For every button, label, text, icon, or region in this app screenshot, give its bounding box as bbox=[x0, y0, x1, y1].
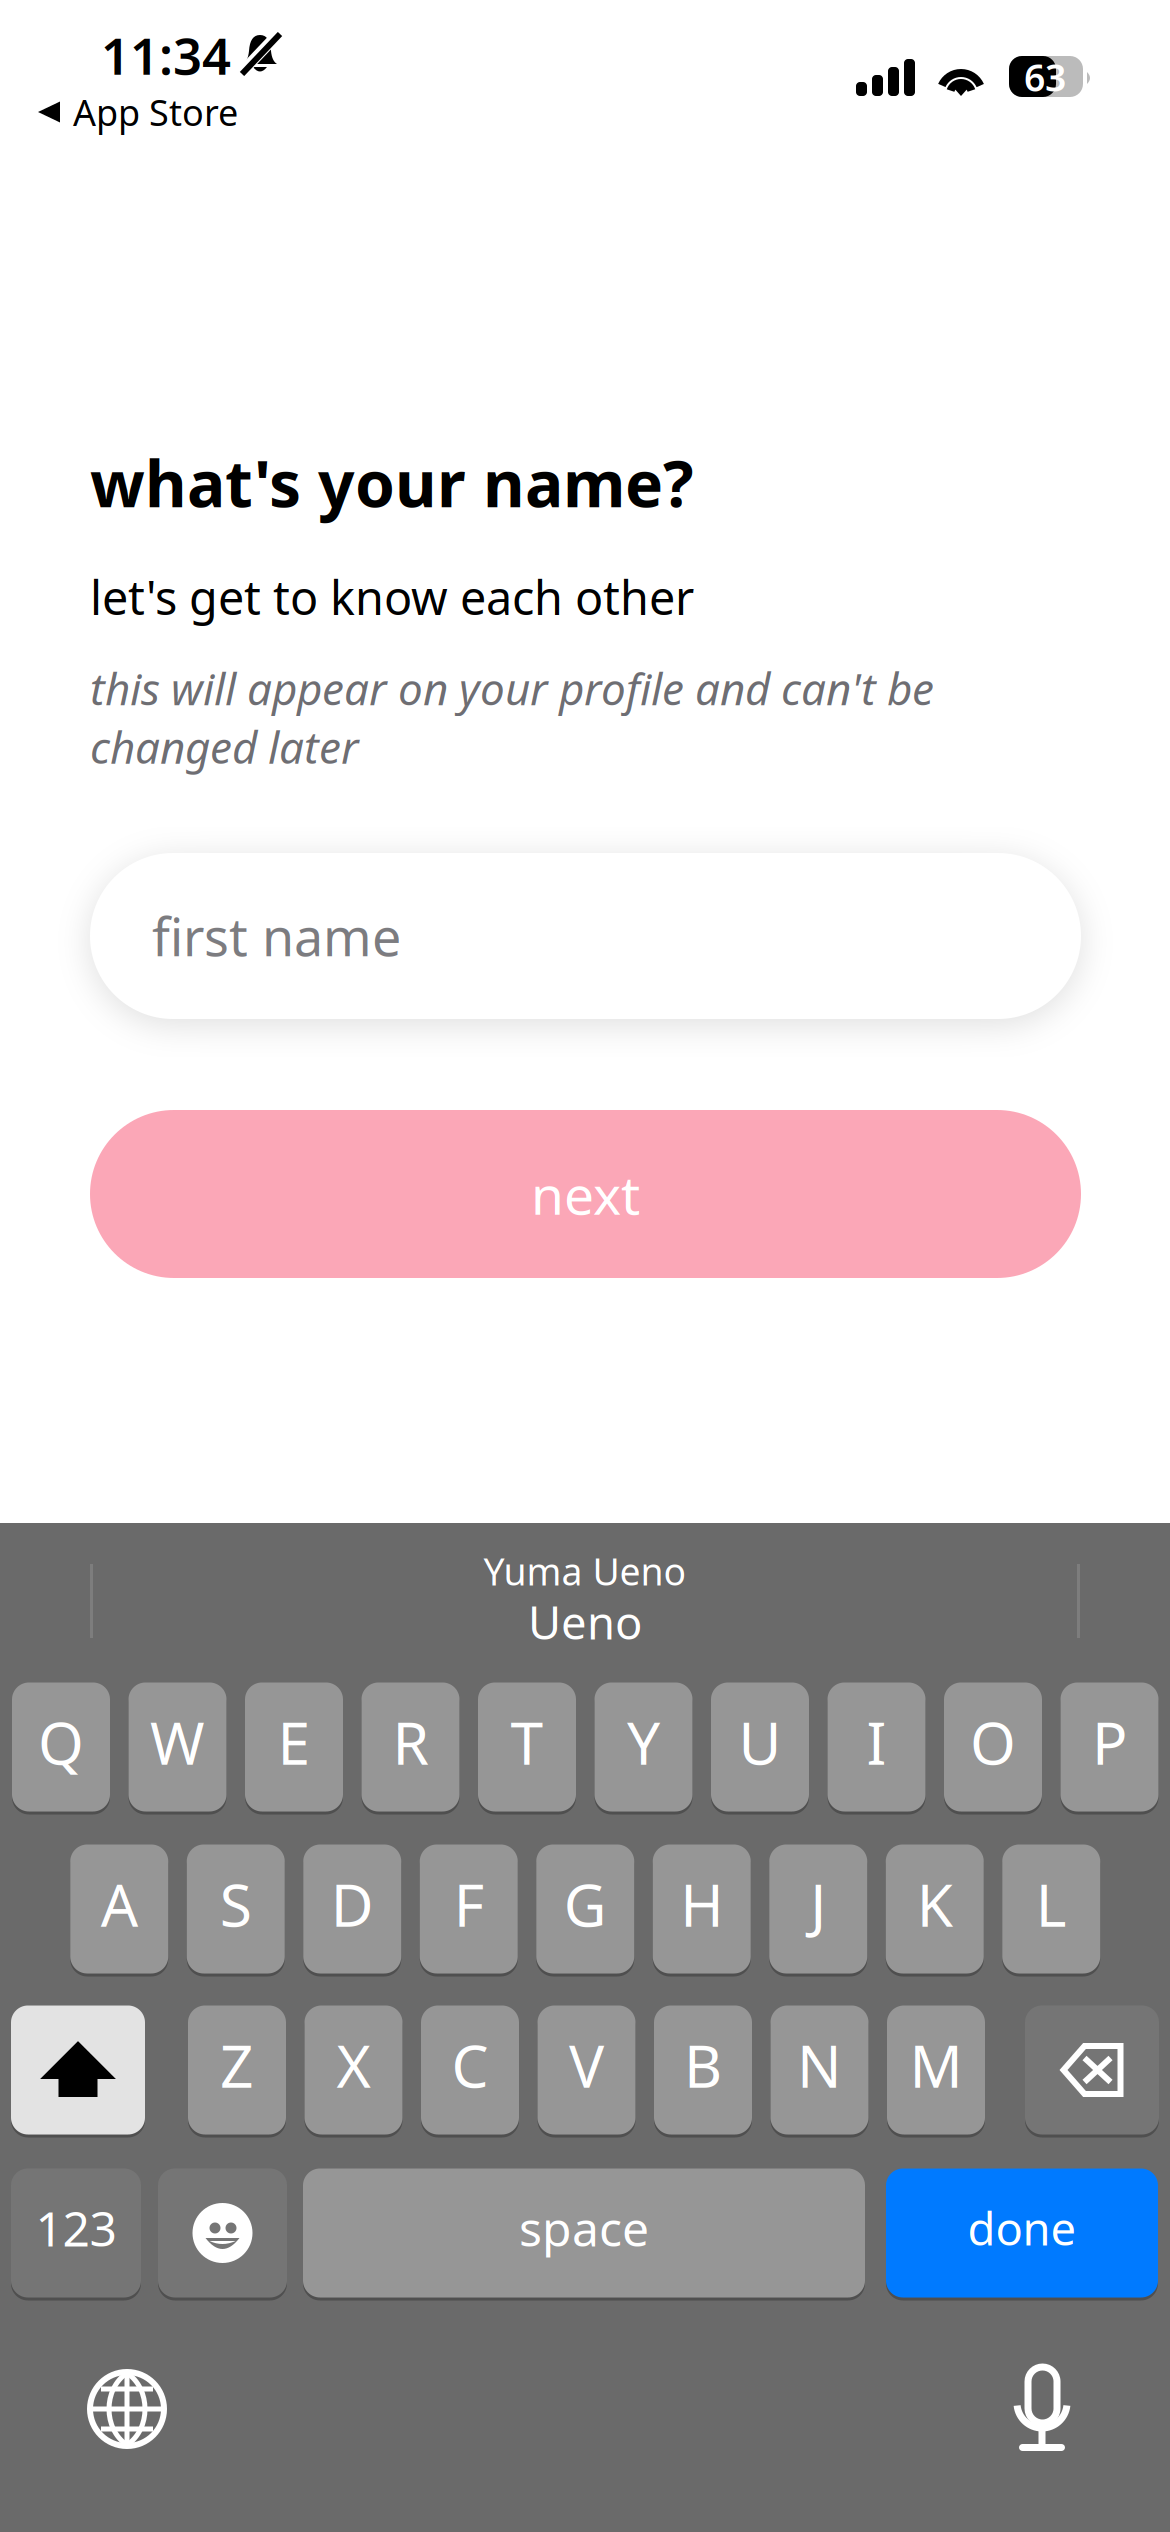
button[interactable]: C bbox=[421, 2004, 519, 2136]
staticText: space bbox=[519, 2196, 649, 2260]
button[interactable]: I bbox=[827, 1681, 925, 1813]
staticText: S bbox=[220, 1865, 252, 1943]
button[interactable]: E bbox=[245, 1681, 343, 1813]
staticText: T bbox=[510, 1703, 543, 1781]
staticText: E bbox=[277, 1703, 310, 1781]
button[interactable]: Switch keyboard bbox=[87, 2369, 167, 2449]
staticText: L bbox=[1036, 1865, 1067, 1943]
staticText: O bbox=[970, 1703, 1016, 1781]
button[interactable]: B bbox=[654, 2004, 752, 2136]
button[interactable]: U bbox=[711, 1681, 809, 1813]
staticText: H bbox=[680, 1865, 723, 1943]
button[interactable]: first name bbox=[90, 853, 1081, 1019]
button[interactable]: Shift bbox=[11, 2004, 145, 2136]
staticText: App Store bbox=[73, 88, 238, 136]
staticText: 123 bbox=[35, 2196, 116, 2260]
button[interactable]: L bbox=[1002, 1843, 1100, 1975]
staticText: D bbox=[331, 1865, 374, 1943]
button[interactable]: T bbox=[478, 1681, 576, 1813]
button[interactable]: X bbox=[304, 2004, 402, 2136]
staticText: C bbox=[451, 2026, 488, 2104]
staticText: first name bbox=[152, 901, 401, 971]
staticText: Q bbox=[38, 1703, 84, 1781]
button[interactable]: next bbox=[90, 1110, 1081, 1278]
button[interactable]: D bbox=[303, 1843, 401, 1975]
staticText: Z bbox=[220, 2026, 254, 2104]
button[interactable]: H bbox=[653, 1843, 751, 1975]
staticText: W bbox=[150, 1703, 205, 1781]
staticText: N bbox=[797, 2026, 842, 2104]
staticText: I bbox=[866, 1703, 886, 1781]
button[interactable]: Z bbox=[188, 2004, 286, 2136]
button[interactable]: done bbox=[886, 2167, 1158, 2299]
staticText: P bbox=[1092, 1703, 1127, 1781]
button[interactable]: P bbox=[1060, 1681, 1158, 1813]
button[interactable]: Emoji bbox=[158, 2167, 287, 2299]
button[interactable]: R bbox=[361, 1681, 459, 1813]
staticText: B bbox=[684, 2026, 722, 2104]
staticText: A bbox=[101, 1865, 138, 1943]
staticText: M bbox=[909, 2026, 962, 2104]
button[interactable]: O bbox=[944, 1681, 1042, 1813]
staticText: done bbox=[967, 2198, 1076, 2258]
button[interactable]: Y bbox=[594, 1681, 692, 1813]
button[interactable]: V bbox=[537, 2004, 635, 2136]
button[interactable]: Q bbox=[12, 1681, 110, 1813]
button[interactable]: F bbox=[420, 1843, 518, 1975]
button[interactable]: K bbox=[886, 1843, 984, 1975]
staticText: Yuma Ueno bbox=[483, 1546, 686, 1596]
staticText: next bbox=[531, 1159, 640, 1229]
staticText: this will appear on your profile and can… bbox=[90, 659, 934, 776]
button[interactable]: M bbox=[887, 2004, 985, 2136]
button[interactable]: W bbox=[128, 1681, 226, 1813]
staticText: 63 bbox=[1024, 52, 1066, 102]
button[interactable]: S bbox=[187, 1843, 285, 1975]
staticText: J bbox=[810, 1865, 826, 1943]
staticText: let's get to know each other bbox=[90, 566, 694, 628]
button[interactable]: J bbox=[769, 1843, 867, 1975]
staticText: F bbox=[454, 1865, 484, 1943]
staticText: U bbox=[738, 1703, 781, 1781]
staticText: R bbox=[392, 1703, 428, 1781]
staticText: Y bbox=[627, 1703, 660, 1781]
button[interactable]: 123 bbox=[11, 2167, 141, 2299]
staticText: what's your name? bbox=[90, 440, 694, 525]
button[interactable]: Delete bbox=[1025, 2004, 1159, 2136]
staticText: V bbox=[569, 2026, 604, 2104]
button[interactable]: N bbox=[770, 2004, 868, 2136]
staticText: G bbox=[564, 1865, 607, 1943]
staticText: Ueno bbox=[528, 1592, 642, 1652]
staticText: X bbox=[336, 2026, 370, 2104]
button[interactable]: A bbox=[70, 1843, 168, 1975]
button[interactable]: G bbox=[536, 1843, 634, 1975]
staticText: K bbox=[917, 1865, 953, 1943]
button[interactable]: space bbox=[303, 2167, 865, 2299]
button[interactable]: Dictation bbox=[1013, 2366, 1070, 2451]
staticText: 11:34 bbox=[101, 21, 231, 89]
button[interactable]: App Store bbox=[38, 90, 358, 134]
